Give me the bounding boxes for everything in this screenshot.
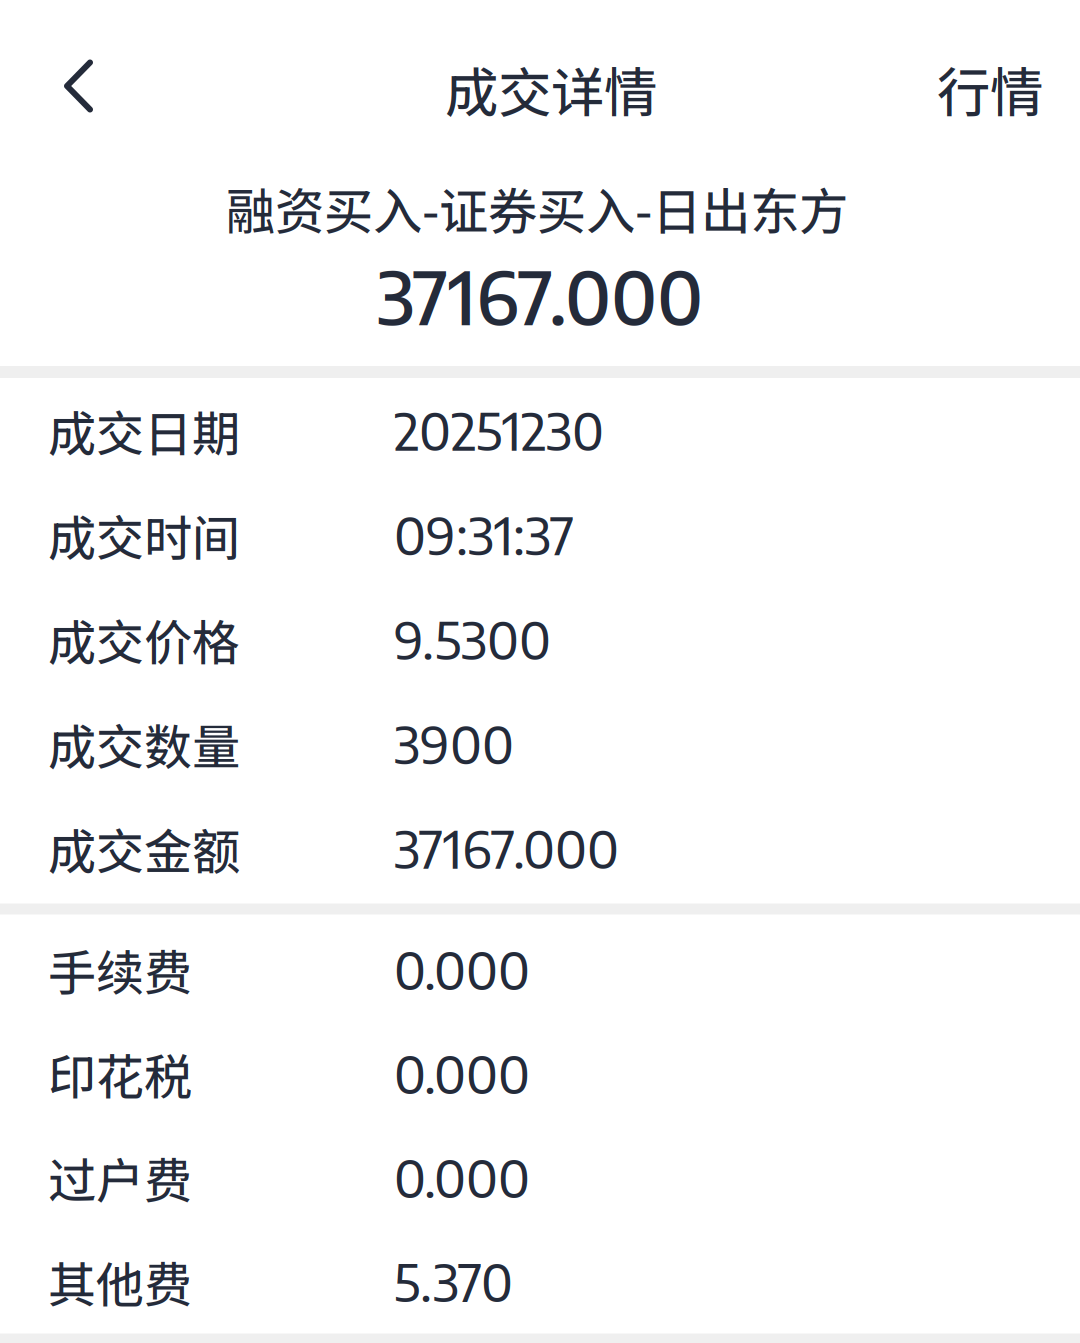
button[interactable]: 返回 [0,14,135,164]
staticText: 手续费 [48,935,192,1004]
staticText: 9.5300 [394,608,551,671]
staticText: 印花税 [48,1039,192,1108]
staticText: 成交金额 [48,813,240,883]
staticText: 3900 [394,712,514,775]
staticText: 09:31:37 [394,503,574,566]
staticText: 过户费 [48,1143,192,1212]
staticText: 0.000 [394,1146,530,1209]
button[interactable]: 行情 [901,19,1080,159]
staticText: 0.000 [394,938,530,1001]
staticText: 成交数量 [48,709,240,778]
staticText: 20251230 [394,399,604,462]
staticText: 行情 [937,50,1043,128]
staticText: 成交时间 [48,500,240,569]
staticText: 成交价格 [48,604,240,674]
staticText: 37167.000 [377,251,703,341]
staticText: 其他费 [48,1247,192,1316]
staticText: 0.000 [394,1042,530,1105]
staticText: 37167.000 [394,817,619,880]
staticText: 融资买入-证券买入-日出东方 [226,172,848,244]
staticText: 5.370 [394,1250,513,1313]
staticText: 成交日期 [48,395,240,465]
staticText: 成交详情 [445,50,657,128]
